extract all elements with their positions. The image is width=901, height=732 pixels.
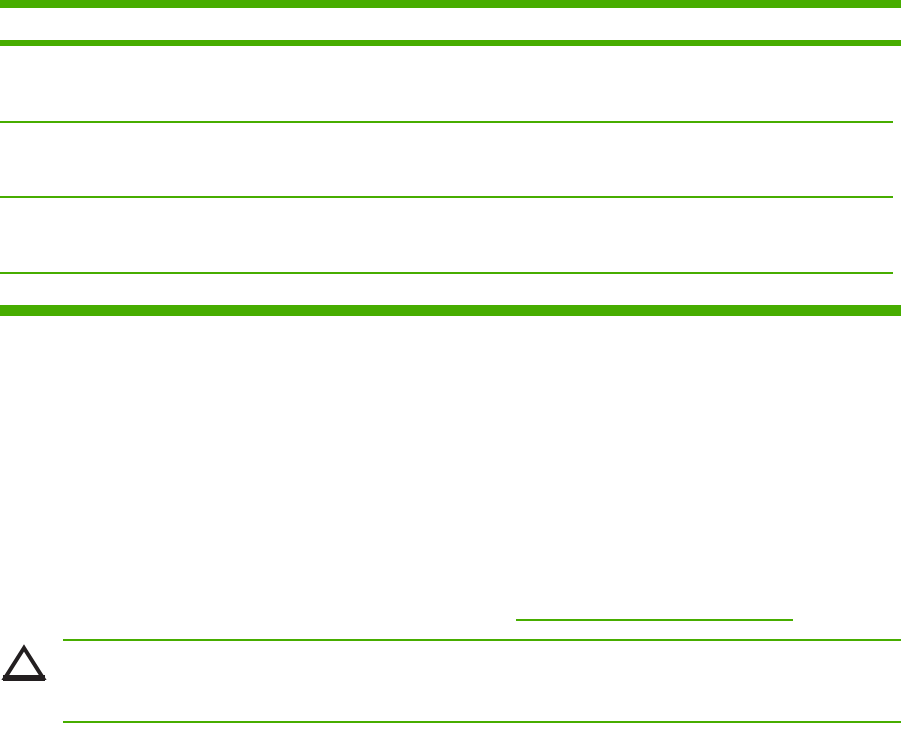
other: Caution bbox=[2, 645, 46, 681]
